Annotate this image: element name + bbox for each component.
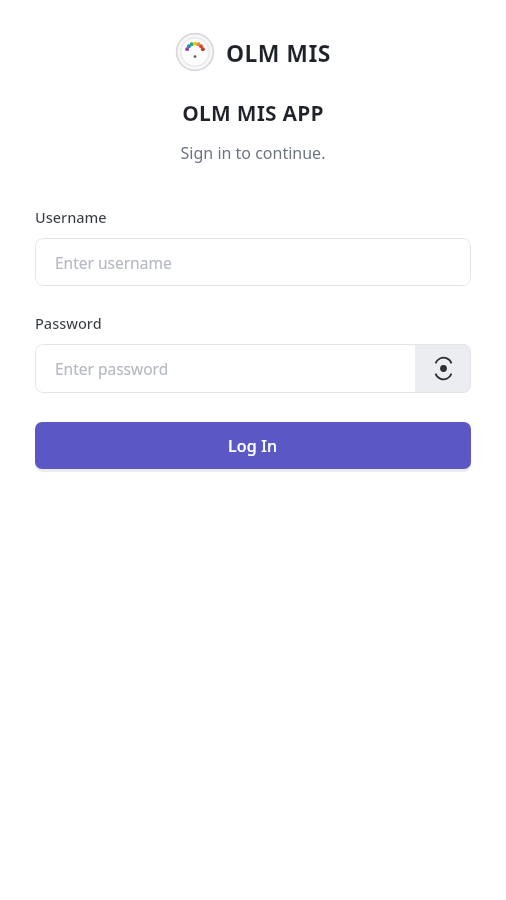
staticText: Username xyxy=(35,207,107,227)
staticText: Enter password xyxy=(55,358,169,379)
button[interactable]: Show password xyxy=(415,344,471,393)
staticText: Sign in to continue. xyxy=(0,142,506,164)
staticText: OLM MIS APP xyxy=(0,99,506,128)
button[interactable]: Enter username xyxy=(35,238,471,286)
staticText: Enter username xyxy=(55,252,172,273)
button[interactable]: Log In xyxy=(35,422,471,469)
staticText: Password xyxy=(35,313,102,333)
button[interactable]: Enter password xyxy=(35,344,415,393)
staticText: OLM MIS xyxy=(226,37,331,68)
staticText: Log In xyxy=(228,435,278,457)
